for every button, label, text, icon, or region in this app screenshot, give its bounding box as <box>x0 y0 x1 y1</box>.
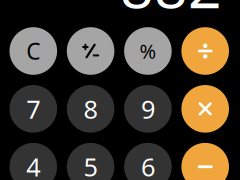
button[interactable]: 8 <box>67 85 114 133</box>
button[interactable]: Divide <box>181 27 229 75</box>
button[interactable]: 5 <box>67 143 114 180</box>
staticText: 5 <box>84 150 98 180</box>
button[interactable]: Multiply <box>181 85 229 133</box>
staticText: C <box>26 36 40 66</box>
button[interactable]: Clear <box>9 27 57 75</box>
staticText: 7 <box>26 92 40 126</box>
button[interactable]: 7 <box>9 85 57 133</box>
button[interactable]: 4 <box>9 143 57 180</box>
staticText: 4 <box>26 150 40 180</box>
button[interactable]: 6 <box>124 143 172 180</box>
staticText: 882 <box>120 0 222 24</box>
staticText: 8 <box>84 92 98 126</box>
button[interactable]: 9 <box>124 85 172 133</box>
button[interactable]: Minus <box>181 143 229 180</box>
staticText: 6 <box>141 150 155 180</box>
button[interactable]: Percent <box>124 27 172 75</box>
button[interactable]: Plus minus <box>67 27 114 75</box>
staticText: % <box>139 38 156 64</box>
staticText: 9 <box>141 92 155 126</box>
